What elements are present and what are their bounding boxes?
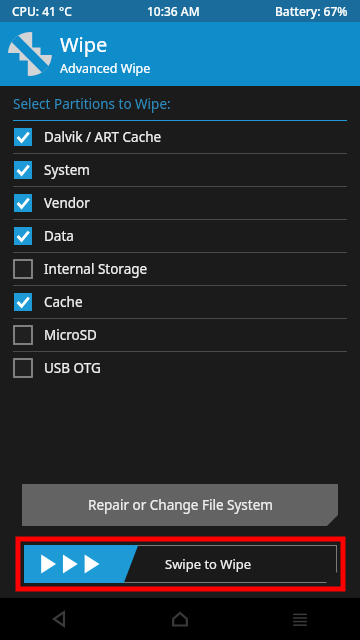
staticText: Vendor [44,194,90,212]
staticText: Data [44,227,74,245]
button[interactable]: Vendor [0,187,360,220]
staticText: Repair or Change File System [88,496,273,514]
button[interactable]: Home [120,598,240,640]
staticText: Battery: 67% [275,3,348,19]
button[interactable]: Repair or Change File System [22,484,338,526]
staticText: Select Partitions to Wipe: [13,95,171,113]
button[interactable]: MicroSD [0,319,360,352]
staticText: CPU: 41 °C [12,3,72,19]
button[interactable]: Cache [0,286,360,319]
staticText: Advanced Wipe [60,60,151,77]
staticText: System [44,161,90,179]
staticText: USB OTG [44,359,101,377]
button[interactable]: Menu [240,598,360,640]
button[interactable]: Internal Storage [0,253,360,286]
staticText: Dalvik / ART Cache [44,128,162,146]
button[interactable]: USB OTG [0,352,360,384]
button[interactable]: Swipe to Wipe [24,545,337,583]
staticText: 10:36 AM [147,3,200,19]
button[interactable]: Data [0,220,360,253]
staticText: Wipe [60,31,108,58]
button[interactable]: Dalvik / ART Cache [0,121,360,154]
staticText: Swipe to Wipe [165,555,252,573]
staticText: Cache [44,293,83,311]
button[interactable]: System [0,154,360,187]
button[interactable]: Back [0,598,120,640]
staticText: MicroSD [44,326,97,344]
staticText: Internal Storage [44,260,148,278]
